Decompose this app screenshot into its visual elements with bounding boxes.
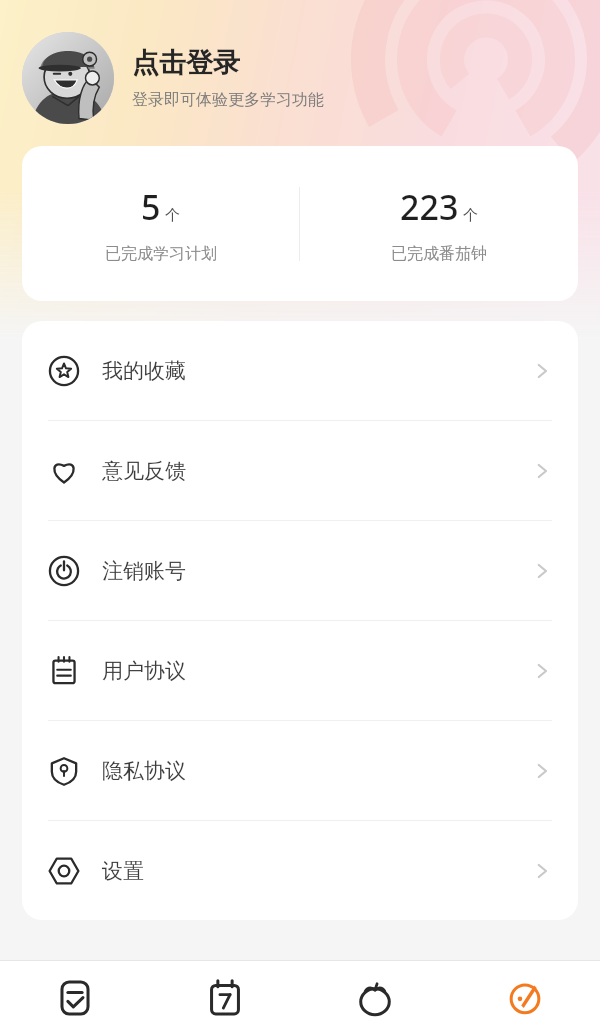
button[interactable]: 意见反馈	[22, 421, 578, 520]
button[interactable]: 任务	[0, 961, 150, 1022]
staticText: 已完成番茄钟	[391, 244, 487, 264]
staticText: 点击登录	[132, 46, 240, 80]
staticText: 注销账号	[102, 558, 186, 584]
staticText: 意见反馈	[102, 458, 186, 484]
staticText: 隐私协议	[102, 758, 186, 784]
button[interactable]: 我的收藏	[22, 321, 578, 420]
staticText: 5	[141, 184, 161, 230]
staticText: 登录即可体验更多学习功能	[132, 90, 324, 110]
staticText: 用户协议	[102, 658, 186, 684]
button[interactable]: 隐私协议	[22, 721, 578, 820]
button[interactable]: 点击登录	[22, 32, 578, 124]
button[interactable]: 我的	[450, 961, 600, 1022]
staticText: 个	[165, 206, 180, 225]
button[interactable]: 用户协议	[22, 621, 578, 720]
staticText: 已完成学习计划	[105, 244, 217, 264]
button[interactable]: 设置	[22, 821, 578, 920]
button[interactable]: 5	[22, 184, 299, 264]
staticText: 设置	[102, 858, 144, 884]
button[interactable]: 番茄钟	[300, 961, 450, 1022]
staticText: 我的收藏	[102, 358, 186, 384]
staticText: 223	[400, 184, 459, 230]
staticText: 个	[463, 206, 478, 225]
button[interactable]: 223	[300, 184, 578, 264]
button[interactable]: 注销账号	[22, 521, 578, 620]
button[interactable]: 日历	[150, 961, 300, 1022]
